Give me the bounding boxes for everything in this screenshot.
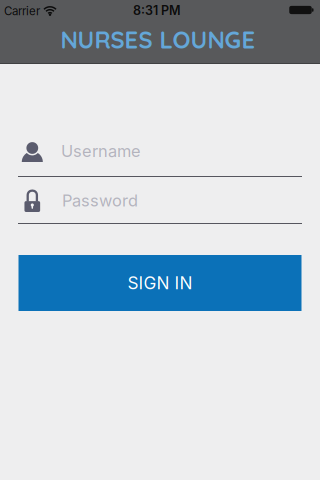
button[interactable]: SIGN IN	[18, 255, 301, 311]
staticText: SIGN IN	[127, 273, 192, 293]
staticText: Username	[61, 141, 141, 161]
button[interactable]: Password	[17, 180, 303, 224]
staticText: 8:31 PM	[133, 3, 181, 18]
staticText: Password	[62, 191, 138, 210]
staticText: NURSES LOUNGE	[60, 25, 255, 54]
staticText: Carrier	[4, 4, 40, 18]
button[interactable]: Username	[17, 135, 303, 179]
